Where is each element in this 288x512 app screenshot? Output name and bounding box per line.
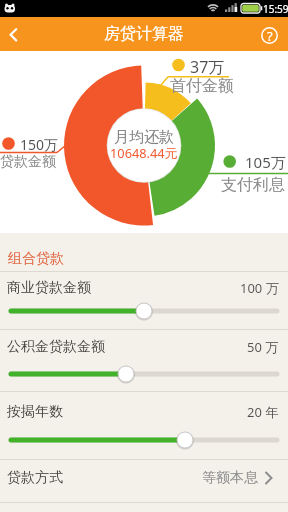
staticText: 105万 [245, 152, 286, 172]
staticText: 首付金额 [170, 76, 234, 96]
staticText: ? [267, 27, 273, 45]
staticText: 支付利息 [221, 175, 285, 195]
staticText: 15:59 [263, 2, 288, 16]
staticText: 10648.44元 [110, 144, 178, 161]
staticText: 等额本息 [202, 469, 258, 487]
button[interactable]: 贷款方式 [0, 460, 288, 502]
staticText: 商业贷款金额 [7, 279, 91, 297]
staticText: 公积金贷款金额 [7, 338, 105, 356]
staticText: 150万 [20, 135, 59, 154]
staticText: 100 万 [240, 279, 279, 297]
button[interactable] [0, 364, 288, 384]
button[interactable] [0, 17, 34, 51]
button[interactable]: ? [258, 24, 281, 47]
staticText: 房贷计算器 [104, 24, 184, 44]
staticText: 按揭年数 [7, 403, 63, 421]
staticText: 37万 [190, 56, 225, 78]
staticText: 贷款方式 [7, 469, 63, 487]
staticText: 月均还款 [114, 128, 174, 146]
staticText: 组合贷款 [8, 250, 64, 268]
staticText: 50 万 [247, 338, 279, 356]
staticText: 贷款金额 [0, 153, 56, 171]
staticText: 20 年 [247, 403, 279, 421]
button[interactable] [0, 301, 288, 321]
button[interactable] [0, 430, 288, 450]
